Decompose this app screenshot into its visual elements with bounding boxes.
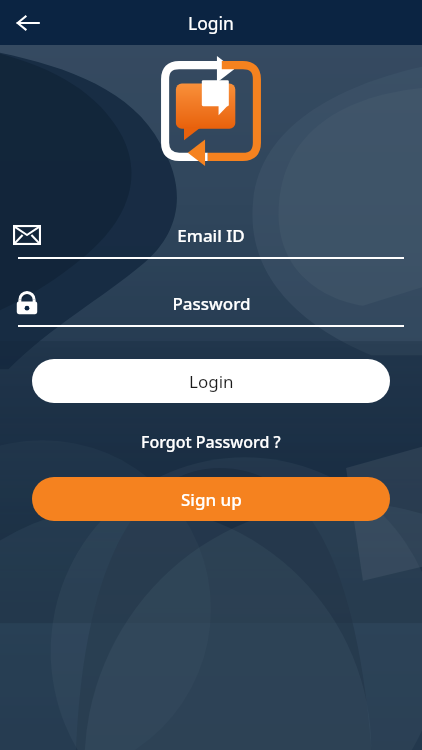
staticText: Password [172, 292, 251, 315]
staticText: Login [188, 11, 234, 35]
staticText: Forgot Password ? [141, 431, 281, 453]
button[interactable]: Password [0, 281, 422, 327]
button[interactable]: Forgot Password ? [129, 427, 293, 457]
button[interactable]: Email ID [0, 213, 422, 259]
button[interactable]: Login [32, 359, 390, 403]
staticText: Email ID [177, 224, 245, 247]
staticText: Login [189, 370, 234, 393]
button[interactable]: Back [8, 3, 48, 43]
staticText: Sign up [181, 488, 242, 511]
button[interactable]: Sign up [32, 477, 390, 521]
